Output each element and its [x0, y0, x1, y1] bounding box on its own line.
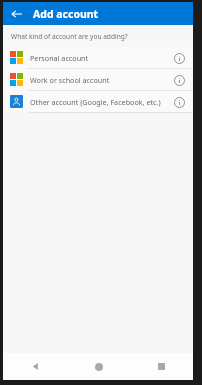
button[interactable]: Other account (Google, Facebook, etc.) — [3, 91, 193, 112]
button[interactable]: More information about Other account (Go… — [171, 94, 187, 110]
button[interactable]: Home — [67, 353, 130, 380]
button[interactable]: More information about Work or school ac… — [171, 72, 187, 88]
button[interactable]: More information about Personal account — [171, 50, 187, 66]
staticText: Work or school account — [30, 75, 168, 85]
button[interactable]: Back — [7, 4, 27, 24]
staticText: Personal account — [30, 53, 168, 63]
button[interactable]: Recent apps — [130, 353, 193, 380]
staticText: Add account — [33, 7, 99, 21]
staticText: What kind of account are you adding? — [11, 32, 128, 41]
staticText: Other account (Google, Facebook, etc.) — [30, 97, 168, 107]
button[interactable]: Back — [3, 353, 67, 380]
button[interactable]: Work or school account — [3, 69, 193, 90]
button[interactable]: Personal account — [3, 47, 193, 68]
